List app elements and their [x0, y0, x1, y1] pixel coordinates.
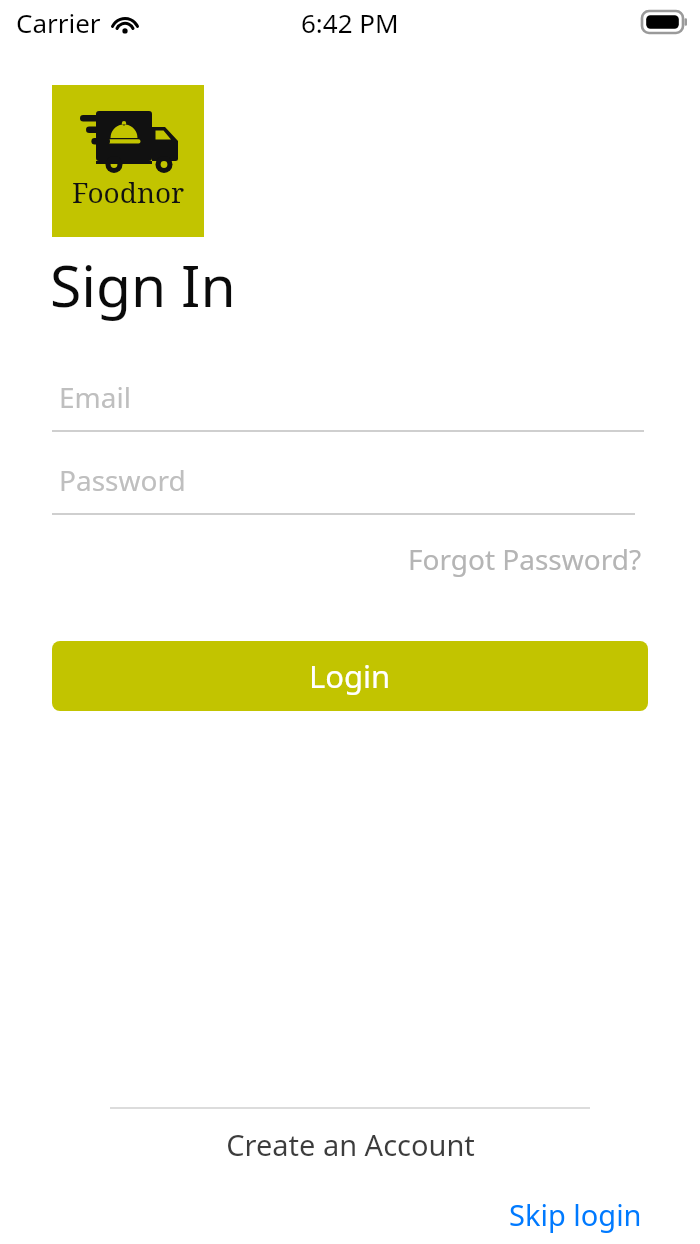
staticText: Login	[309, 655, 391, 697]
staticText: Password	[59, 461, 186, 499]
button[interactable]: Password	[52, 461, 635, 515]
staticText: Create an Account	[226, 1125, 475, 1164]
staticText: Foodnor	[72, 173, 185, 211]
button[interactable]: Forgot Password?	[0, 540, 642, 578]
staticText: Carrier	[16, 5, 101, 40]
staticText: Forgot Password?	[408, 540, 642, 578]
staticText: 6:42 PM	[301, 5, 399, 40]
button[interactable]: Email	[52, 378, 644, 432]
button[interactable]: Skip login	[509, 1195, 642, 1234]
staticText: Email	[59, 378, 131, 416]
staticText: Sign In	[50, 246, 236, 324]
button[interactable]: Create an Account	[0, 1122, 700, 1166]
staticText: Skip login	[509, 1195, 642, 1234]
button[interactable]: Login	[52, 641, 648, 711]
